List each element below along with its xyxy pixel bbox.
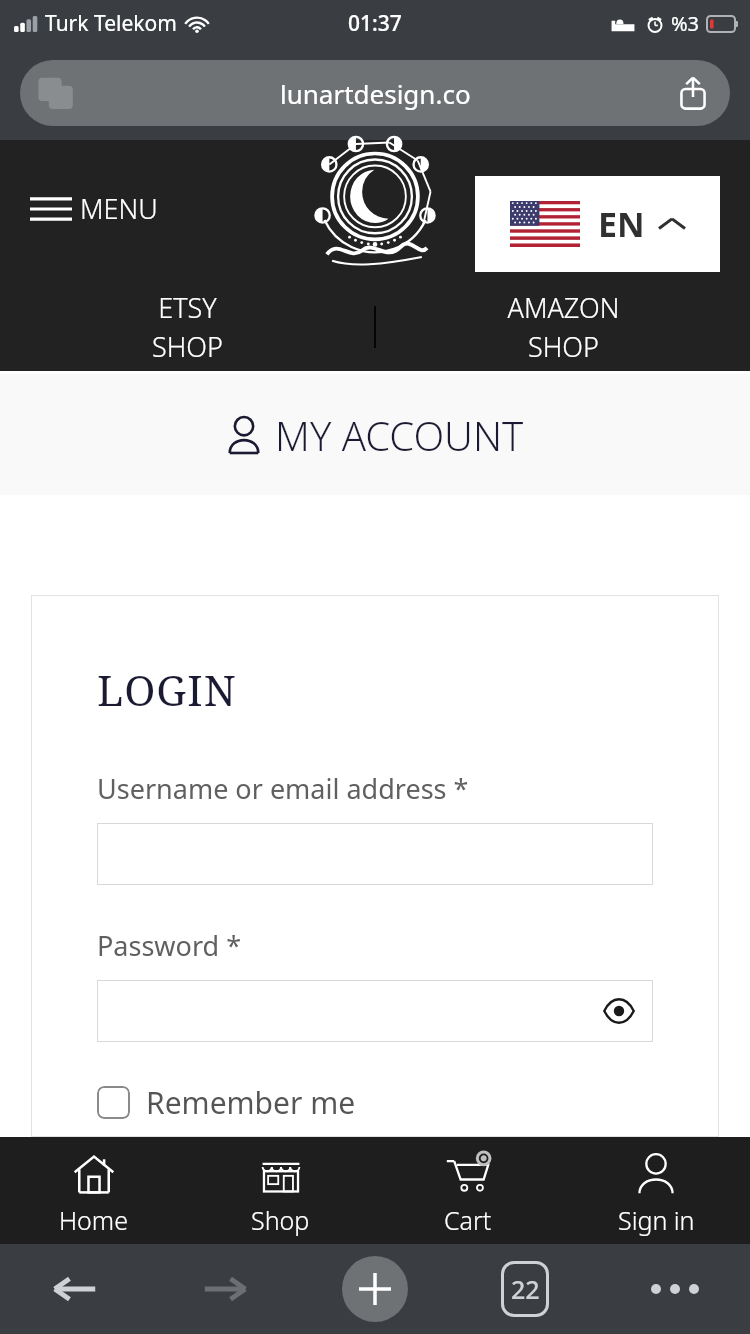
staticText: 22 <box>511 1272 540 1306</box>
staticText: 01:37 <box>348 9 402 38</box>
staticText: Cart <box>444 1203 492 1237</box>
staticText: Password * <box>97 927 242 964</box>
button[interactable]: Forward <box>150 1244 300 1334</box>
button[interactable]: Tabs <box>450 1244 600 1334</box>
button[interactable]: Cart <box>374 1137 562 1244</box>
button[interactable]: Back <box>0 1244 150 1334</box>
button[interactable]: Share <box>676 76 710 110</box>
staticText: EN <box>598 201 645 247</box>
button[interactable]: Translate <box>20 60 730 126</box>
staticText: LOGIN <box>97 661 237 718</box>
button[interactable]: More <box>600 1244 750 1334</box>
staticText: Home <box>59 1203 128 1237</box>
button[interactable]: Lunart Design home <box>310 146 440 272</box>
staticText: %3 <box>671 10 700 37</box>
button[interactable]: ETSY SHOP <box>0 289 374 365</box>
button[interactable] <box>97 823 653 885</box>
staticText: ETSY SHOP <box>152 289 223 365</box>
staticText: MENU <box>80 190 158 227</box>
button[interactable]: Remember me <box>97 1082 356 1123</box>
button[interactable]: Show password <box>97 980 653 1042</box>
button[interactable]: Show password <box>601 993 637 1029</box>
button[interactable]: MENU <box>30 190 158 227</box>
button[interactable]: EN <box>475 176 720 272</box>
button[interactable]: Translate <box>36 73 76 113</box>
button[interactable]: Home <box>0 1137 187 1244</box>
button[interactable]: Sign in <box>562 1137 750 1244</box>
staticText: Sign in <box>618 1203 695 1237</box>
staticText: Username or email address * <box>97 770 469 807</box>
staticText: Remember me <box>146 1082 356 1123</box>
staticText: lunartdesign.co <box>280 76 471 111</box>
staticText: AMAZON SHOP <box>507 289 620 365</box>
staticText: Shop <box>251 1203 310 1237</box>
button[interactable]: Shop <box>187 1137 374 1244</box>
staticText: Turk Telekom <box>45 9 177 38</box>
button[interactable]: New tab <box>300 1244 450 1334</box>
staticText: MY ACCOUNT <box>275 408 524 462</box>
button[interactable]: AMAZON SHOP <box>376 289 750 365</box>
